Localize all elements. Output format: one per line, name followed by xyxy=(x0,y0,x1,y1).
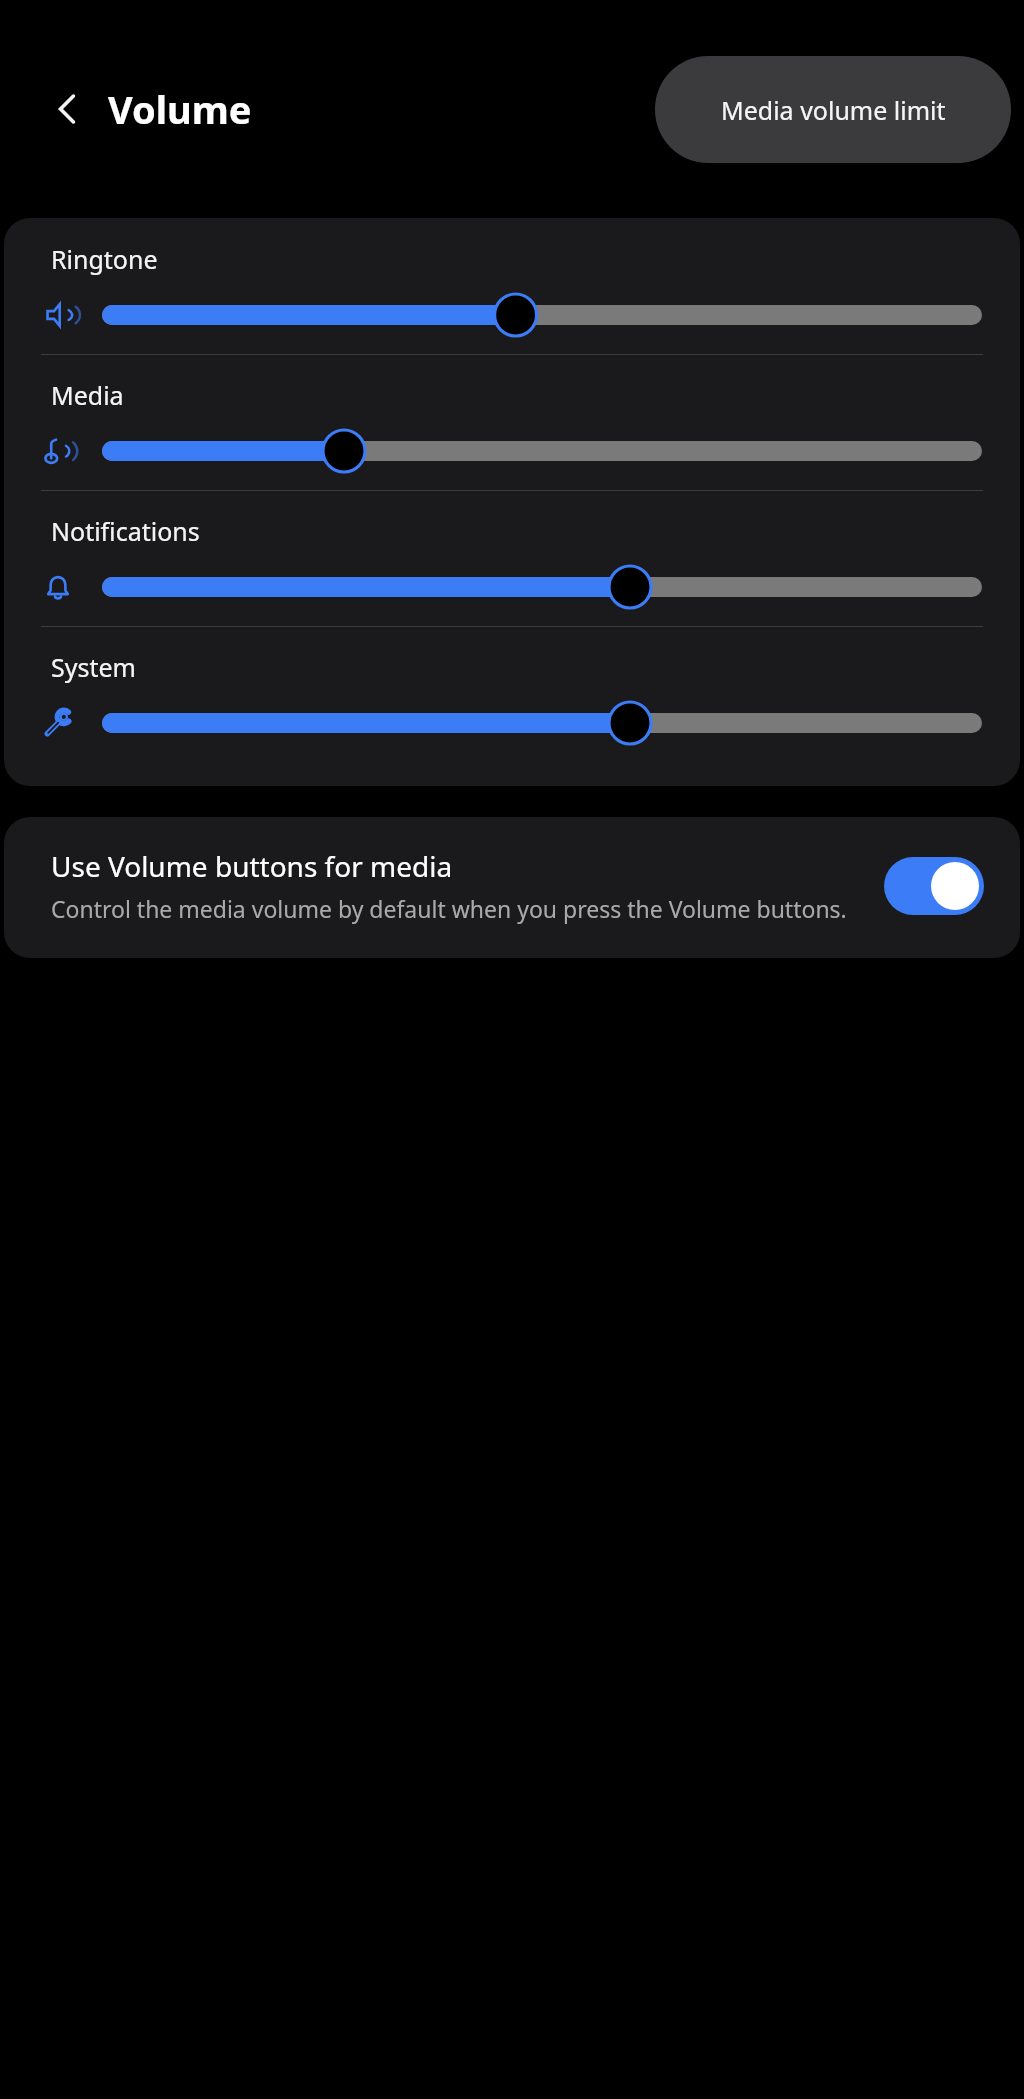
button[interactable]: Media volume xyxy=(4,412,1020,490)
other: Ringtone volume xyxy=(41,298,75,332)
button[interactable]: System volume xyxy=(4,684,1020,762)
other: System volume xyxy=(41,706,75,740)
staticText: Control the media volume by default when… xyxy=(51,893,847,924)
staticText: System xyxy=(51,650,136,684)
staticText: Use Volume buttons for media xyxy=(51,847,453,885)
staticText: Media volume limit xyxy=(721,93,946,127)
staticText: Volume xyxy=(108,83,252,135)
staticText: Ringtone xyxy=(51,242,158,276)
button[interactable]: Use Volume buttons for media toggle xyxy=(884,857,984,915)
staticText: Notifications xyxy=(51,514,200,548)
staticText: Media xyxy=(51,378,124,412)
other: Media volume xyxy=(41,434,75,468)
button[interactable]: Back xyxy=(42,83,94,135)
button[interactable]: Media volume limit xyxy=(655,56,1011,163)
button[interactable]: Ringtone volume xyxy=(4,276,1020,354)
other: Notification volume xyxy=(41,570,75,604)
button[interactable]: Use Volume buttons for media xyxy=(4,817,1020,958)
button[interactable]: Notification volume xyxy=(4,548,1020,626)
